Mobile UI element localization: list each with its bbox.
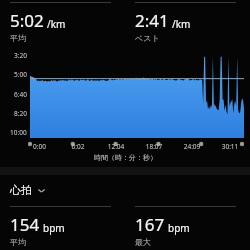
staticText: 2:41 [135,9,169,32]
staticText: 12:04 [97,142,135,151]
staticText: 30:11 [211,142,249,151]
button[interactable]: 5:02 [0,2,125,43]
staticText: 心拍 [10,183,32,197]
staticText: 8:20 [14,109,27,118]
staticText: bpm [43,221,65,235]
staticText: bpm [168,221,190,235]
other: Expand heart rate [37,186,46,195]
staticText: 6:02 [59,142,97,151]
staticText: 最大 [135,237,151,247]
button[interactable]: 167 [125,206,250,247]
button[interactable]: 154 [0,206,125,247]
button[interactable]: 心拍 [0,175,250,201]
staticText: 24:09 [173,142,211,151]
staticText: 平均 [10,33,26,43]
staticText: ベスト [135,33,160,43]
staticText: /km [172,17,191,31]
staticText: 10:00 [10,128,27,137]
staticText: 5:02 [10,9,44,32]
staticText: 平均 [10,237,26,247]
staticText: 154 [10,213,40,236]
staticText: 3:20 [14,51,27,60]
staticText: 時間（時：分：秒） [94,153,157,162]
staticText: 167 [135,213,165,236]
staticText: 18:07 [135,142,173,151]
button[interactable]: 2:41 [125,2,250,43]
staticText: 0:00 [20,142,59,151]
staticText: 6:40 [14,90,27,99]
staticText: /km [47,17,66,31]
staticText: 5:00 [14,70,27,79]
